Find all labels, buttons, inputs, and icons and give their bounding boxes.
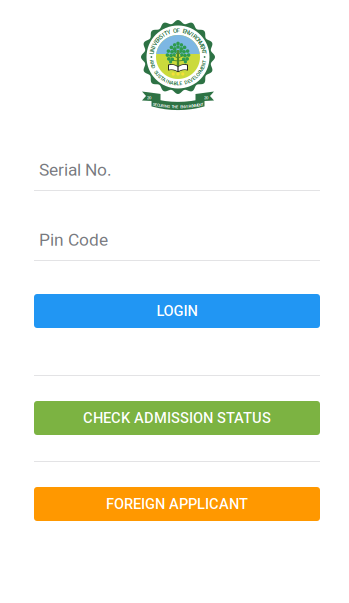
staticText: O	[191, 104, 193, 108]
staticText: A	[170, 80, 174, 86]
staticText: E	[187, 78, 190, 84]
staticText: N	[150, 61, 154, 68]
staticText: E	[197, 103, 199, 107]
staticText: F	[176, 27, 179, 34]
button[interactable]: LOGIN	[34, 294, 320, 328]
staticText: N	[151, 46, 155, 53]
staticText: CHECK ADMISSION STATUS	[83, 409, 271, 427]
staticText	[154, 66, 155, 73]
staticText: E	[155, 38, 158, 45]
staticText: I	[187, 104, 188, 109]
staticText: R	[157, 35, 161, 42]
staticText: Serial No.	[39, 160, 112, 180]
staticText: R	[193, 33, 197, 40]
staticText: T	[164, 30, 168, 37]
staticText: L	[176, 80, 179, 87]
staticText: T	[172, 105, 174, 109]
staticText: H	[173, 105, 176, 109]
staticText: T	[161, 75, 164, 81]
staticText: N	[201, 46, 205, 53]
button[interactable]: FOREIGN APPLICANT	[34, 487, 320, 521]
staticText: E	[201, 64, 204, 70]
staticText: S	[155, 69, 158, 75]
staticText: V	[188, 30, 192, 37]
staticText: N	[185, 29, 189, 36]
staticText: E	[201, 43, 204, 50]
staticText: N	[168, 79, 172, 85]
staticText: C	[157, 103, 159, 107]
staticText: G	[167, 104, 169, 109]
staticText: T	[203, 58, 206, 65]
staticText: M	[198, 40, 203, 47]
staticText: 20	[147, 95, 151, 100]
staticText: O	[195, 35, 199, 42]
staticText: A	[150, 58, 154, 65]
staticText	[183, 80, 184, 86]
staticText: R	[161, 104, 163, 108]
staticText: M	[199, 66, 204, 73]
staticText: V	[153, 40, 157, 47]
staticText: N	[199, 103, 202, 107]
staticText: S	[153, 102, 155, 107]
staticText: R	[189, 104, 191, 108]
staticText: E	[179, 80, 182, 86]
staticText	[170, 105, 171, 109]
staticText: Y	[167, 29, 171, 36]
staticText: T	[201, 102, 203, 107]
staticText: U	[150, 49, 154, 56]
staticText: E	[180, 105, 182, 109]
staticText: B	[174, 80, 177, 86]
staticText: S	[159, 33, 163, 40]
staticText: O	[173, 27, 177, 34]
staticText: U	[159, 103, 161, 108]
staticText: D	[184, 79, 188, 85]
staticText: E	[183, 28, 186, 35]
staticText: T	[202, 49, 206, 56]
staticText: I	[166, 78, 168, 84]
staticText: N	[201, 61, 205, 68]
staticText: N	[165, 104, 168, 108]
staticText: LOGIN	[156, 302, 197, 320]
staticText: I	[192, 31, 194, 38]
staticText: V	[184, 105, 186, 109]
staticText: 20	[204, 95, 208, 100]
staticText: U	[156, 71, 160, 77]
staticText: V	[190, 77, 194, 83]
staticText: FOREIGN APPLICANT	[106, 495, 248, 513]
staticText: I	[164, 104, 165, 108]
staticText: L	[195, 73, 198, 80]
staticText: I	[153, 43, 155, 50]
staticText: E	[192, 75, 195, 81]
staticText: Pin Code	[39, 230, 108, 250]
staticText: S	[158, 73, 161, 80]
staticText: A	[162, 77, 166, 83]
staticText: E	[176, 105, 178, 109]
staticText: N	[182, 105, 185, 109]
staticText: P	[198, 69, 201, 75]
staticText: I	[162, 31, 164, 38]
staticText: M	[194, 103, 197, 108]
staticText: O	[196, 71, 200, 77]
staticText: N	[192, 104, 195, 108]
staticText: E	[155, 103, 157, 107]
staticText: N	[197, 38, 201, 45]
button[interactable]: CHECK ADMISSION STATUS	[34, 401, 320, 435]
staticText: D	[151, 64, 155, 70]
